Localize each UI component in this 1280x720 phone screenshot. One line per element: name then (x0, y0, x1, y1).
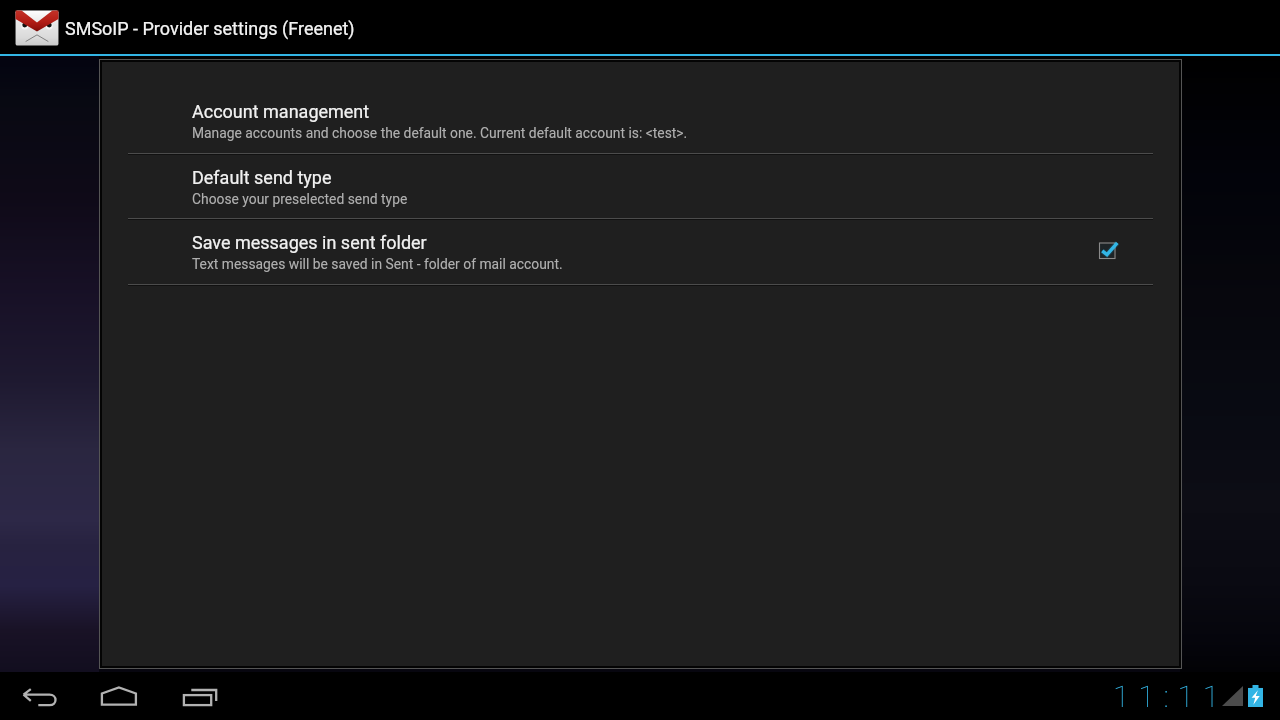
staticText: Manage accounts and choose the default o… (192, 125, 688, 141)
staticText: SMSoIP - Provider settings (Freenet) (65, 18, 355, 39)
button[interactable]: 11:11 (1112, 672, 1232, 720)
staticText: Text messages will be saved in Sent - fo… (192, 256, 563, 272)
button[interactable]: Save messages in sent folder (102, 219, 1179, 284)
staticText: Choose your preselected send type (192, 191, 408, 207)
button[interactable]: Account management (102, 88, 1179, 153)
staticText: Default send type (192, 167, 332, 188)
staticText: 11:11 (1113, 679, 1229, 714)
staticText: Account management (192, 101, 370, 122)
button[interactable]: Recent apps (177, 672, 225, 720)
button[interactable]: Back (18, 672, 66, 720)
button[interactable]: Default send type (102, 154, 1179, 219)
staticText: Save messages in sent folder (192, 232, 427, 253)
button[interactable]: Home (95, 672, 143, 720)
button[interactable]: Save messages in sent folder checkbox (1085, 228, 1133, 276)
